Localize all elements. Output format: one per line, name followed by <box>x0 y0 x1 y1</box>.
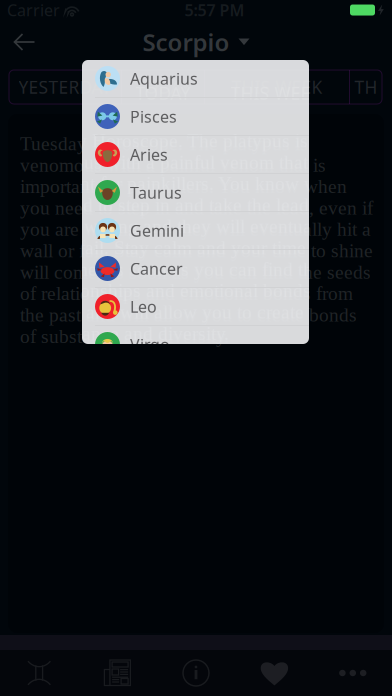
staticText: Tuesday Horoscope. The platypus is venom… <box>20 130 373 344</box>
button[interactable]: More <box>314 650 392 696</box>
staticText: TODAY <box>135 75 190 98</box>
button[interactable]: Pisces <box>82 98 309 136</box>
staticText: Gemini <box>130 220 184 241</box>
button[interactable]: Scorpio <box>142 20 249 64</box>
staticText: TH <box>354 75 377 98</box>
button[interactable]: Info <box>157 650 235 696</box>
staticText: Leo <box>130 296 157 317</box>
staticText: Aries <box>130 144 168 165</box>
button[interactable]: Favorites <box>235 650 314 696</box>
button[interactable]: Taurus <box>82 174 309 212</box>
staticText: Scorpio <box>142 26 229 58</box>
button[interactable]: Back <box>0 20 51 64</box>
staticText: Taurus <box>130 182 182 203</box>
button[interactable]: TH <box>350 70 382 104</box>
button[interactable]: Leo <box>82 288 309 326</box>
staticText: Cancer <box>130 258 183 279</box>
staticText: THIS WEEK <box>231 75 322 98</box>
staticText: Tuesday Horoscope. The platypus is venom… <box>20 133 373 347</box>
button[interactable]: Aries <box>82 136 309 174</box>
button[interactable]: News <box>78 650 157 696</box>
button[interactable]: Virgo <box>82 326 309 363</box>
button[interactable]: THIS WEEK <box>205 70 349 104</box>
staticText: 5:57 PM <box>184 0 244 21</box>
staticText: THIS WEEK <box>230 81 321 104</box>
staticText: Aquarius <box>130 68 198 89</box>
button[interactable]: Zodiac signs <box>0 650 78 696</box>
staticText: Pisces <box>130 106 177 127</box>
button[interactable]: Aquarius <box>82 60 309 98</box>
button[interactable]: YESTERDAY <box>9 70 121 104</box>
button[interactable]: Cancer <box>82 250 309 288</box>
staticText: Virgo <box>130 334 170 355</box>
staticText: YESTERDAY <box>18 75 111 98</box>
button[interactable]: Gemini <box>82 212 309 250</box>
staticText: Carrier <box>7 0 60 21</box>
staticText: TODAY <box>135 81 190 104</box>
button[interactable]: TODAY <box>122 70 204 104</box>
